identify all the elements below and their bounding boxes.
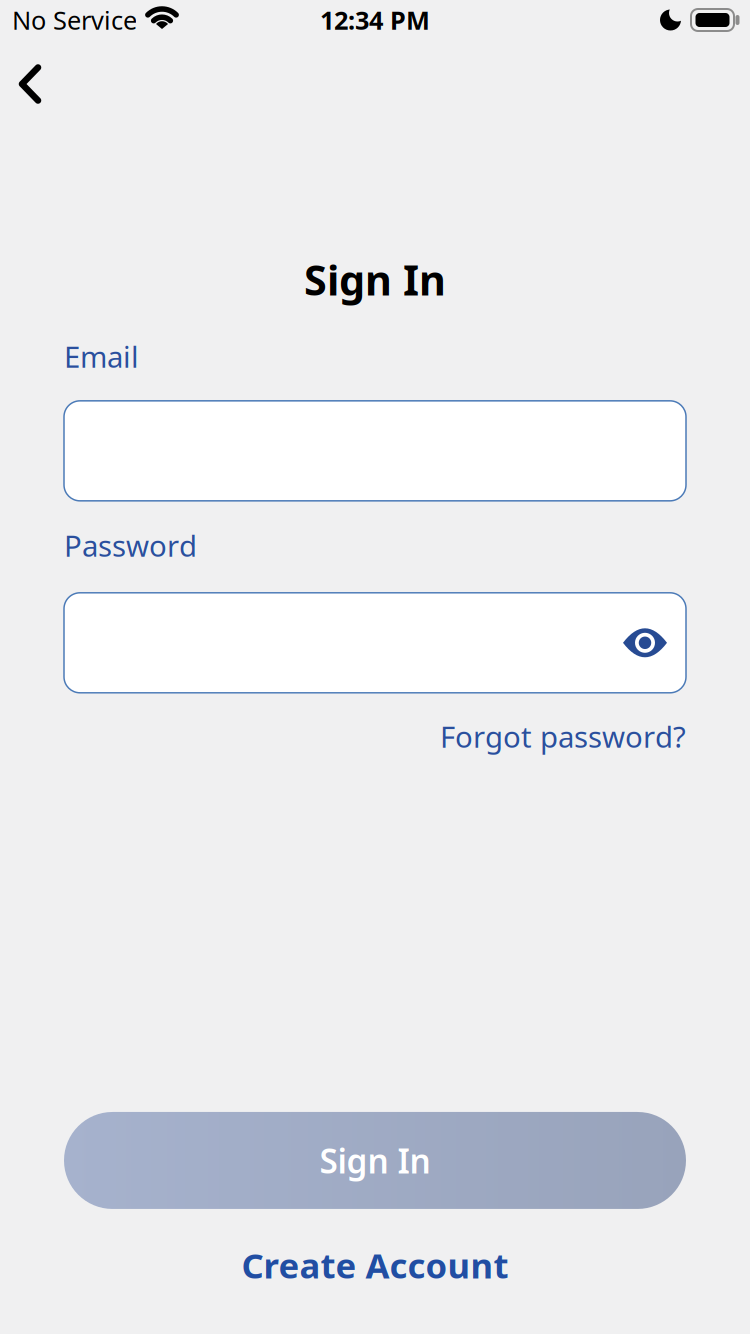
button[interactable]: Sign In (64, 1112, 686, 1209)
staticText: Password (64, 526, 197, 565)
button[interactable]: Create Account (241, 1242, 508, 1288)
staticText: Forgot password? (440, 717, 686, 756)
button[interactable]: Back (0, 44, 58, 123)
staticText: Sign In (319, 1138, 430, 1183)
staticText: Sign In (304, 252, 446, 307)
staticText: Email (64, 337, 139, 376)
staticText: 12:34 PM (320, 3, 430, 37)
staticText: Create Account (241, 1242, 508, 1288)
staticText: No Service (12, 3, 137, 37)
button[interactable]: Forgot password? (440, 717, 686, 756)
button[interactable]: Show password (623, 628, 667, 658)
